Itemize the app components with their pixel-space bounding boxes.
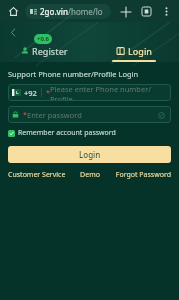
button[interactable]: Forgot Password: [111, 170, 171, 180]
staticText: Please enter Phone number/Profile: [50, 84, 167, 101]
staticText: Forgot Password: [111, 170, 171, 180]
button[interactable]: Home: [5, 3, 21, 19]
button[interactable]: New tab: [117, 3, 134, 20]
staticText: *: [23, 110, 27, 120]
staticText: +92: [24, 88, 37, 98]
staticText: *: [46, 88, 50, 98]
button[interactable]: *: [8, 106, 171, 123]
button[interactable]: +92: [8, 84, 171, 101]
staticText: +0.6: [37, 35, 49, 43]
button[interactable]: More options: [159, 4, 174, 19]
staticText: Login: [128, 45, 152, 57]
staticText: Demo: [69, 170, 111, 180]
staticText: Enter password: [27, 110, 82, 120]
button[interactable]: Remember account password: [8, 128, 116, 138]
button[interactable]: 2go.vin: [25, 4, 111, 19]
button[interactable]: Show password: [155, 109, 167, 121]
staticText: Login: [79, 149, 101, 160]
button[interactable]: Tabs: [138, 3, 155, 20]
button[interactable]: Demo: [69, 170, 111, 180]
staticText: 2go.vin: [40, 6, 68, 17]
staticText: Remember account password: [18, 128, 116, 138]
button[interactable]: Login: [8, 146, 171, 163]
staticText: Support Phone number/Profile Login: [8, 69, 139, 79]
button[interactable]: Customer Service: [8, 170, 69, 180]
button[interactable]: Register: [0, 45, 89, 62]
staticText: Customer Service: [8, 170, 69, 180]
button[interactable]: Login: [89, 45, 179, 62]
staticText: Register: [32, 45, 68, 57]
staticText: /home/lo: [68, 6, 103, 17]
button[interactable]: Back: [5, 24, 21, 40]
